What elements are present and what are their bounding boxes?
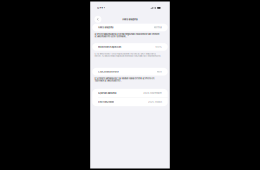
staticText: Ez a funkció aktiválva lesz, ha váratlan… [0, 47, 255, 69]
button[interactable]: Gyártás dátuma [0, 104, 260, 147]
button[interactable]: Csúcsteljesítmény [0, 0, 260, 37]
button[interactable]: Első használat [0, 148, 260, 170]
